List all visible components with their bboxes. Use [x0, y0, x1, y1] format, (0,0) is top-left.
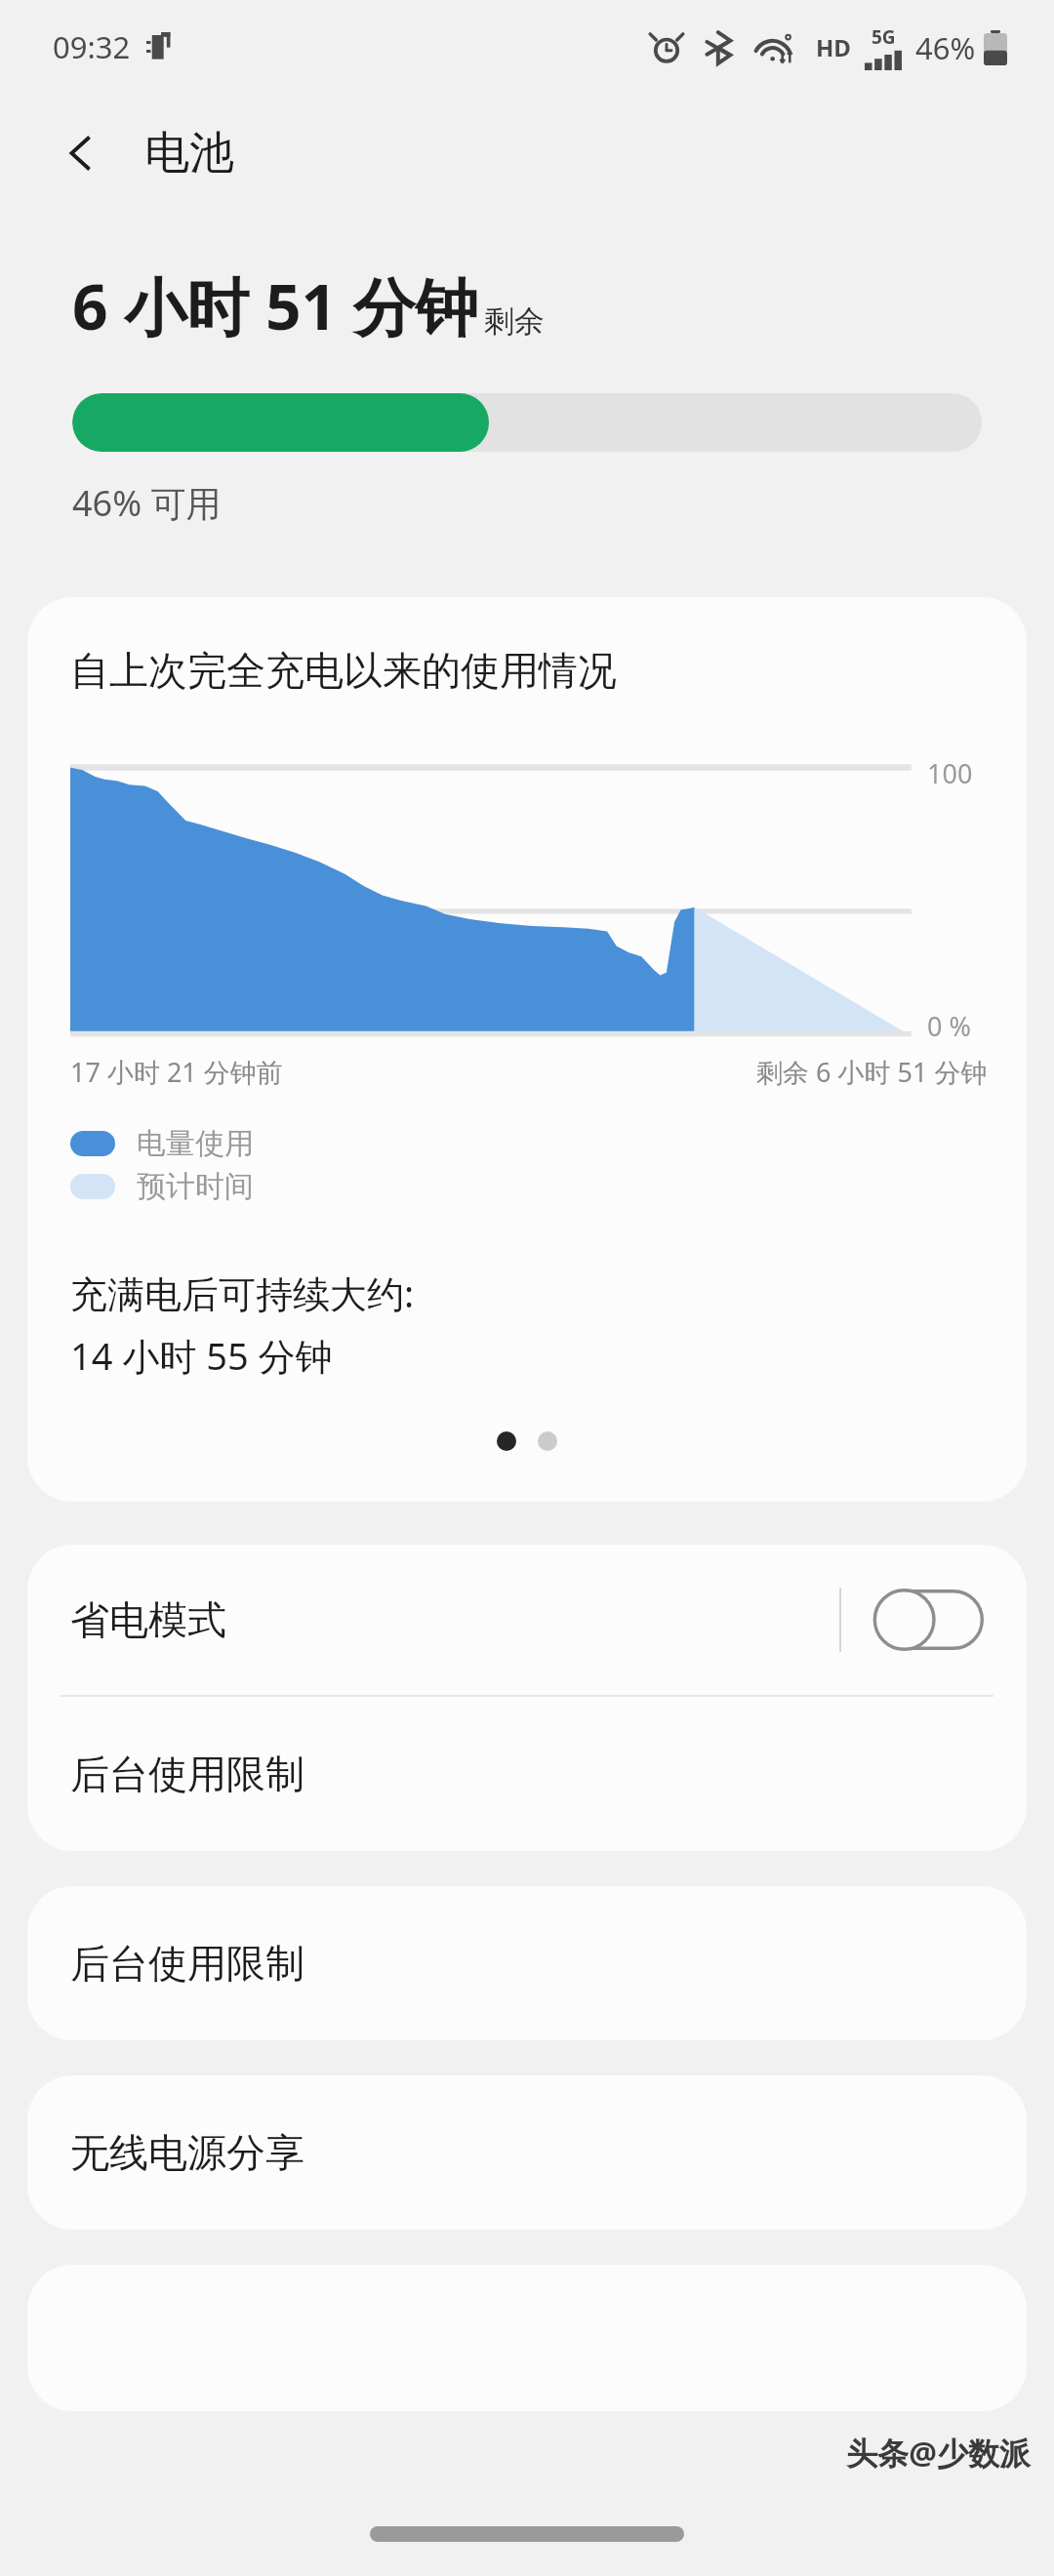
button[interactable]: 无线电源分享: [27, 2075, 1027, 2230]
staticText: 14 小时 55 分钟: [70, 1330, 333, 1381]
staticText: 后台使用限制: [70, 1750, 304, 1798]
button[interactable]: 后台使用限制: [27, 1886, 1027, 2040]
staticText: HD: [816, 31, 851, 63]
staticText: 自上次完全充电以来的使用情况: [70, 646, 617, 695]
staticText: 充满电后可持续大约:: [70, 1268, 415, 1318]
staticText: 46%: [915, 27, 976, 68]
staticText: 后台使用限制: [70, 1939, 304, 1988]
staticText: 无线电源分享: [70, 2128, 304, 2177]
staticText: 5G: [872, 24, 896, 50]
button[interactable]: 省电模式开关: [874, 1590, 984, 1650]
staticText: 100: [927, 755, 973, 791]
button[interactable]: 后台使用限制: [27, 1697, 1027, 1851]
staticText: 0 %: [927, 1008, 971, 1044]
staticText: 头条@少数派: [846, 2432, 1031, 2475]
staticText: 剩余: [484, 302, 545, 341]
button[interactable]: 省电模式: [27, 1545, 1027, 1695]
staticText: 46% 可用: [72, 479, 222, 527]
staticText: 6 小时 51 分钟: [72, 263, 478, 348]
staticText: 省电模式: [70, 1595, 226, 1644]
staticText: 17 小时 21 分钟前: [70, 1054, 283, 1090]
staticText: 预计时间: [137, 1168, 254, 1205]
staticText: 电池: [144, 125, 234, 181]
button[interactable]: 自上次完全充电以来的使用情况: [27, 597, 1027, 1502]
staticText: 剩余 6 小时 51 分钟: [756, 1054, 988, 1090]
button[interactable]: 返回: [39, 111, 123, 195]
staticText: 电量使用: [137, 1125, 254, 1162]
staticText: 09:32: [53, 26, 131, 67]
